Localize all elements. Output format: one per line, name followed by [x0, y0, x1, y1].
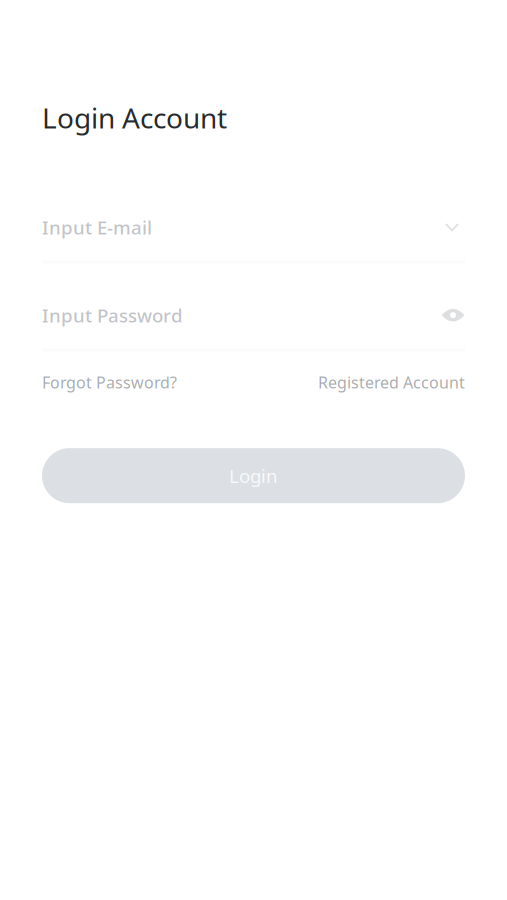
button[interactable]: Forgot Password? [42, 372, 177, 393]
staticText: Login [229, 463, 278, 488]
staticText: Login Account [42, 99, 227, 136]
button[interactable]: Login [42, 448, 465, 503]
staticText: Input E-mail [42, 215, 152, 240]
staticText: Input Password [42, 303, 183, 328]
staticText: Forgot Password? [42, 372, 177, 393]
staticText: Registered Account [318, 372, 465, 393]
button[interactable]: Choose e-mail domain [439, 214, 465, 240]
button[interactable]: Registered Account [318, 372, 465, 393]
button[interactable]: Show password [439, 302, 465, 328]
